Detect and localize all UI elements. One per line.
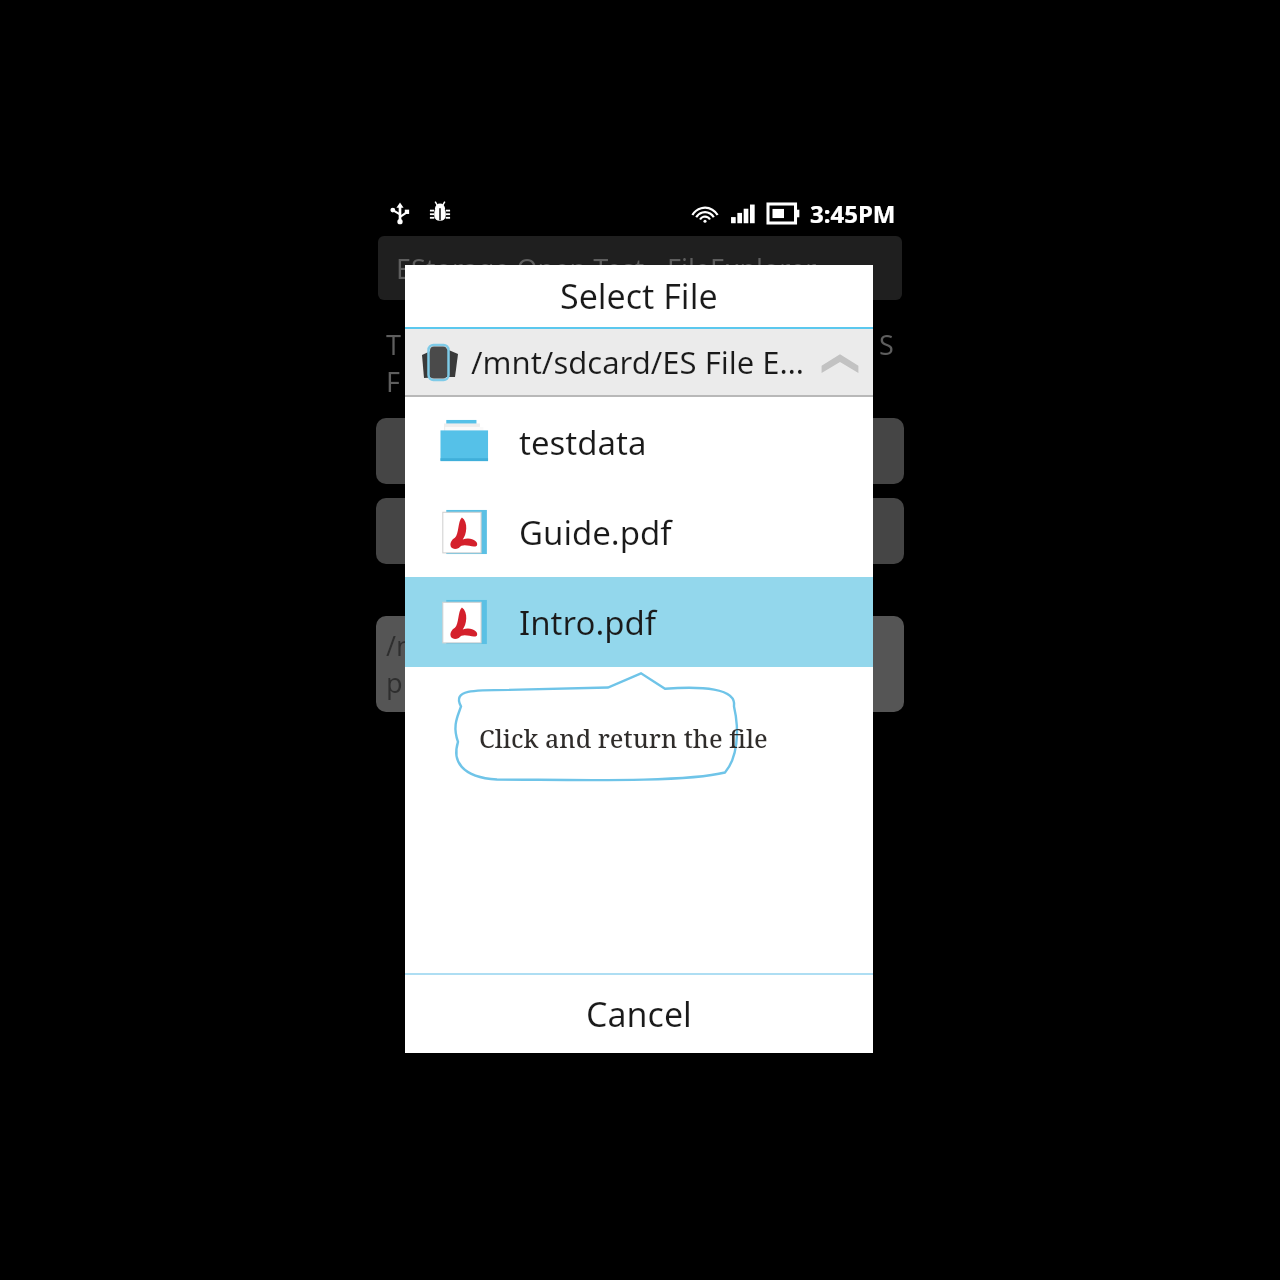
staticText: Click and return the file — [479, 721, 768, 755]
staticText: Guide.pdf — [519, 510, 672, 555]
staticText: p — [386, 664, 403, 701]
button[interactable] — [376, 498, 904, 564]
button[interactable]: Intro.pdf — [405, 577, 873, 667]
staticText: T — [386, 326, 402, 363]
button[interactable]: /n — [376, 616, 904, 712]
button[interactable]: /mnt/sdcard/ES File E… — [405, 329, 873, 395]
button[interactable] — [376, 418, 904, 484]
staticText: 3:45PM — [810, 197, 896, 230]
staticText: testdata — [519, 420, 647, 465]
staticText: Select File — [560, 273, 718, 319]
staticText: /n — [386, 627, 413, 664]
staticText: Cancel — [586, 991, 692, 1037]
staticText: EStorage Open Test - FileExplorer — [396, 250, 817, 287]
button[interactable]: Cancel — [405, 975, 873, 1053]
button[interactable]: testdata — [405, 397, 873, 487]
button[interactable]: Guide.pdf — [405, 487, 873, 577]
button[interactable]: Go up — [817, 339, 863, 385]
staticText: S — [879, 326, 894, 363]
staticText: F — [386, 363, 401, 400]
staticText: /mnt/sdcard/ES File E… — [471, 341, 817, 383]
staticText: Intro.pdf — [519, 600, 657, 645]
